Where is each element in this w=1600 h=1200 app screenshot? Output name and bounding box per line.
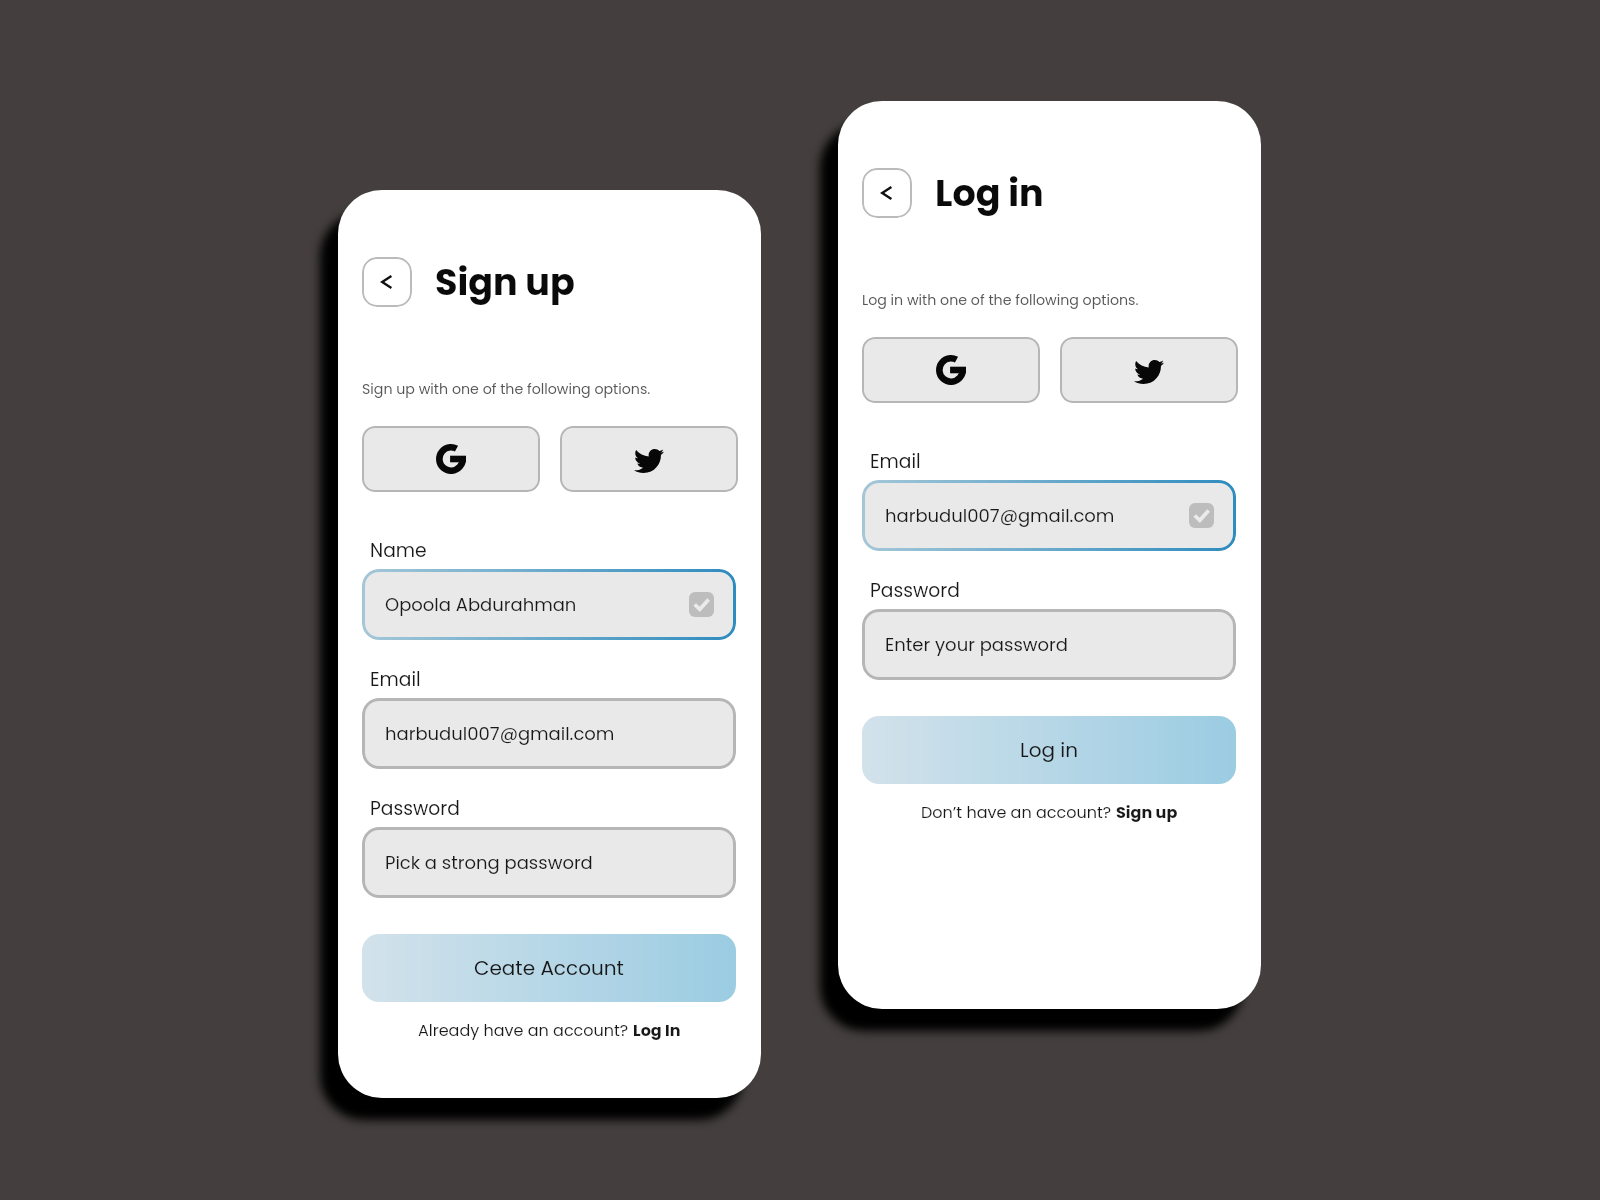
staticText: harbudul007@gmail.com (885, 503, 1115, 528)
button[interactable]: Continue with Google (862, 337, 1040, 403)
button[interactable]: Sign up (1116, 801, 1178, 823)
button[interactable]: Back (862, 168, 912, 218)
staticText: Pick a strong password (385, 850, 593, 875)
staticText: harbudul007@gmail.com (385, 721, 615, 746)
staticText: Log in (935, 168, 1044, 219)
staticText: Don’t have an account? (921, 801, 1116, 823)
button[interactable]: Continue with Twitter (1060, 337, 1238, 403)
staticText: Email (870, 448, 921, 474)
button[interactable]: Continue with Google (362, 426, 540, 492)
button[interactable]: harbudul007@gmail.com (862, 480, 1236, 551)
staticText: Password (870, 577, 960, 603)
button[interactable]: Ceate Account (362, 934, 736, 1002)
staticText: Sign up (435, 257, 575, 308)
staticText: Password (370, 795, 460, 821)
button[interactable]: Pick a strong password (362, 827, 736, 898)
staticText: Opoola Abdurahman (385, 592, 577, 617)
staticText: Email (370, 666, 421, 692)
staticText: Name (370, 537, 427, 563)
staticText: Log in (1020, 736, 1079, 764)
button[interactable]: Opoola Abdurahman (362, 569, 736, 640)
staticText: Sign up with one of the following option… (362, 379, 651, 399)
staticText: Enter your password (885, 632, 1068, 657)
staticText: Already have an account? (418, 1019, 633, 1041)
staticText: Log in with one of the following options… (862, 290, 1139, 310)
button[interactable]: Back (362, 257, 412, 307)
staticText: Ceate Account (474, 954, 624, 982)
button[interactable]: Log in (862, 716, 1236, 784)
button[interactable]: Enter your password (862, 609, 1236, 680)
button[interactable]: harbudul007@gmail.com (362, 698, 736, 769)
button[interactable]: Continue with Twitter (560, 426, 738, 492)
button[interactable]: Log In (633, 1019, 681, 1041)
